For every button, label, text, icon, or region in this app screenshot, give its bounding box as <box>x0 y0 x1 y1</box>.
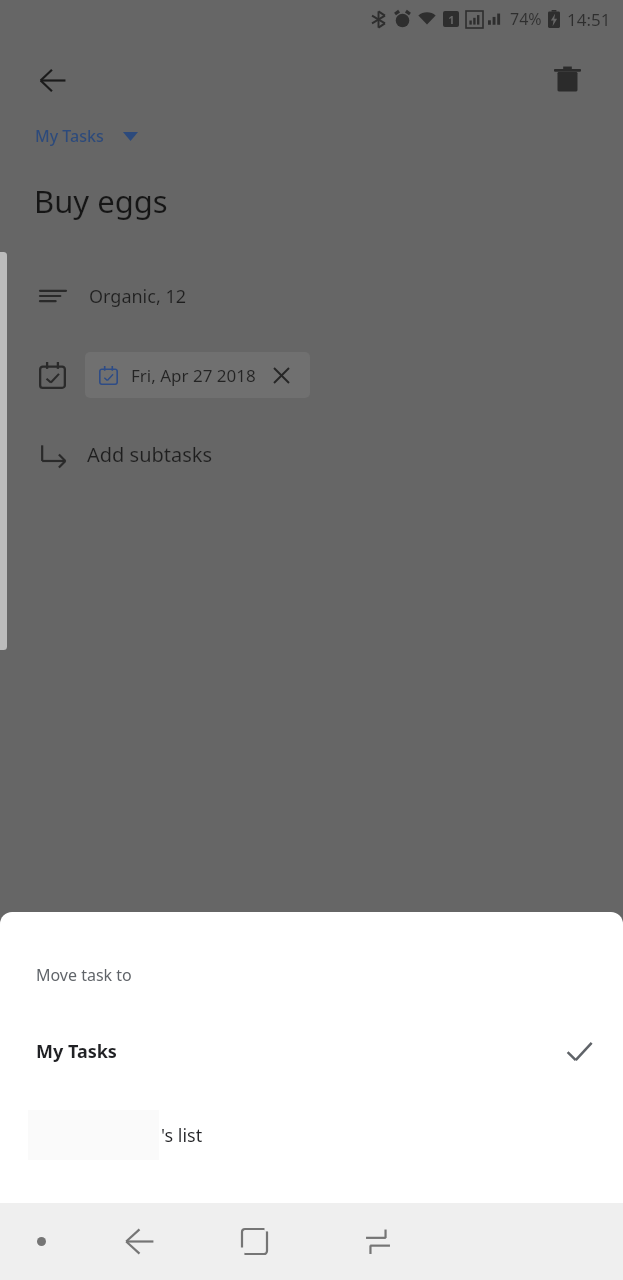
staticText: My Tasks <box>35 125 104 147</box>
staticText: 74% <box>510 8 542 30</box>
button[interactable]: Fri, Apr 27 2018 <box>85 352 310 398</box>
button[interactable]: Remove date <box>266 360 296 390</box>
button[interactable]: My Tasks <box>35 125 138 147</box>
button[interactable]: Home <box>196 1203 313 1280</box>
staticText: 14:51 <box>567 8 611 31</box>
button[interactable]: Add subtasks <box>0 429 623 479</box>
button[interactable]: Back <box>83 1203 196 1280</box>
staticText: Buy eggs <box>34 180 168 222</box>
button[interactable]: Back <box>24 52 80 108</box>
staticText: Add subtasks <box>87 441 213 468</box>
staticText: My Tasks <box>36 1039 117 1064</box>
button[interactable]: Switch apps <box>313 1203 443 1280</box>
staticText: 's list <box>161 1123 203 1148</box>
button[interactable]: Delete <box>540 52 594 106</box>
staticText: Organic, 12 <box>89 284 186 309</box>
staticText: Fri, Apr 27 2018 <box>131 364 256 387</box>
staticText: Move task to <box>36 964 132 986</box>
button[interactable]: 's list <box>0 1108 623 1162</box>
button[interactable]: Organic, 12 <box>0 271 623 321</box>
button[interactable]: My Tasks <box>0 1024 623 1078</box>
staticText: 1 <box>448 12 455 27</box>
